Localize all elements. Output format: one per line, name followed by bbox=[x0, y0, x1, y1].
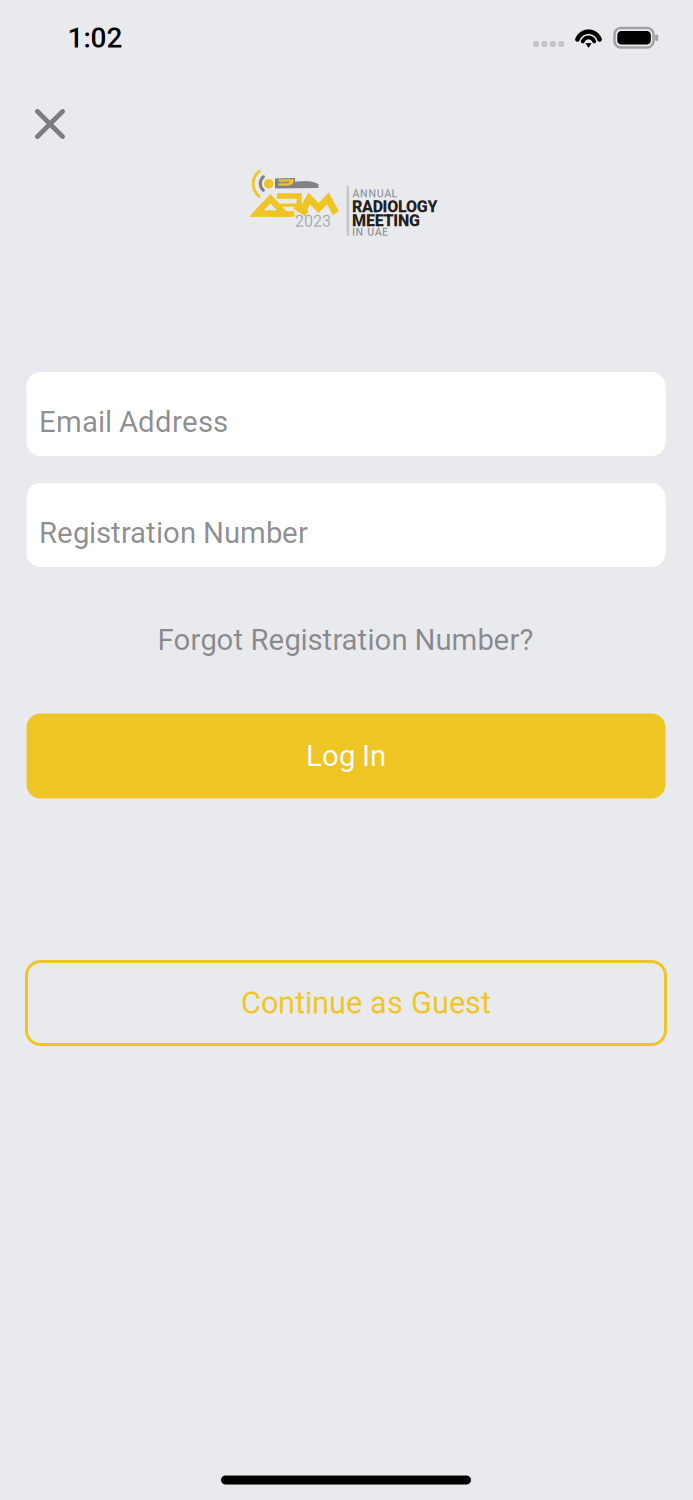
staticText: Log In bbox=[306, 739, 386, 773]
button[interactable]: Continue as Guest bbox=[26, 961, 665, 1044]
staticText: Registration Number bbox=[39, 516, 308, 550]
staticText: MEETING bbox=[352, 211, 420, 230]
staticText: IN UAE bbox=[352, 226, 388, 238]
staticText: ANNUAL bbox=[353, 187, 398, 200]
staticText: Continue as Guest bbox=[241, 985, 491, 1021]
button[interactable]: Log In bbox=[26, 713, 665, 798]
staticText: RADIOLOGY bbox=[352, 197, 437, 216]
staticText: Email Address bbox=[39, 405, 228, 439]
staticText: Forgot Registration Number? bbox=[157, 623, 533, 657]
button[interactable]: Forgot Registration Number? bbox=[85, 612, 605, 668]
button[interactable]: Close bbox=[15, 89, 85, 159]
staticText: 1:02 bbox=[67, 22, 122, 54]
staticText: 2023 bbox=[295, 212, 331, 231]
